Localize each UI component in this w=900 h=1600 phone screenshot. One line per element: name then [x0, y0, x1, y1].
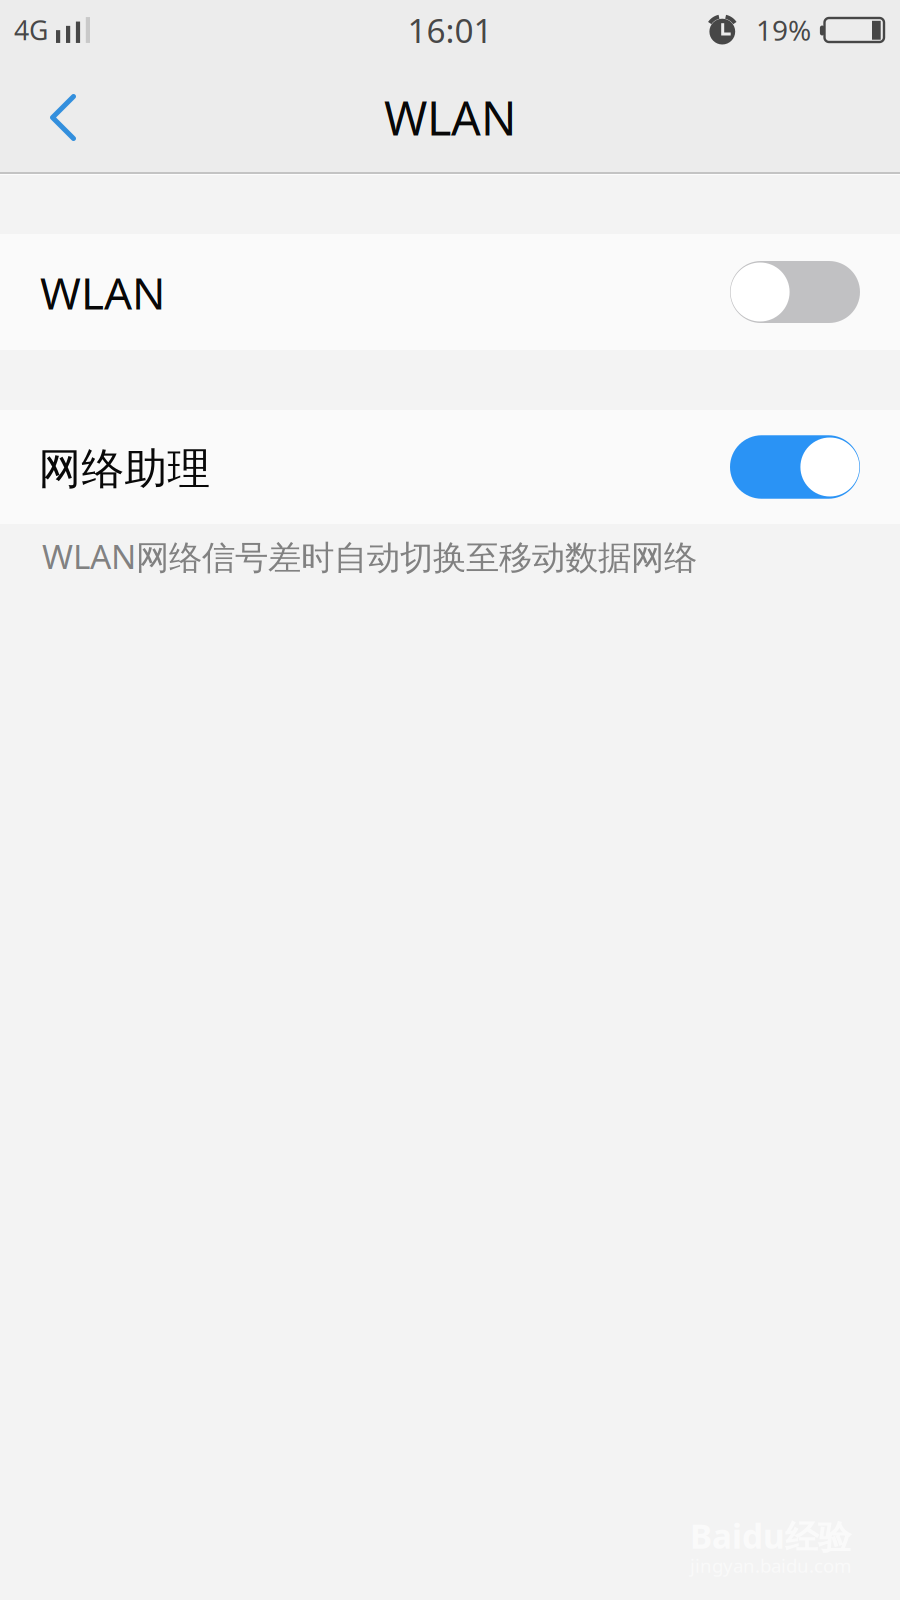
button[interactable]: WLAN — [0, 234, 900, 350]
staticText: 19% — [756, 11, 811, 49]
staticText: 4G — [14, 12, 48, 48]
staticText: 网络助理 — [38, 443, 210, 495]
staticText: WLAN网络信号差时自动切换至移动数据网络 — [42, 534, 697, 578]
staticText: WLAN — [40, 263, 165, 322]
button[interactable]: Back — [26, 67, 100, 167]
staticText: Baidu经验 — [690, 1514, 851, 1558]
staticText: 16:01 — [407, 8, 492, 52]
button[interactable]: 网络助理 — [0, 410, 900, 524]
staticText: WLAN — [384, 86, 516, 148]
